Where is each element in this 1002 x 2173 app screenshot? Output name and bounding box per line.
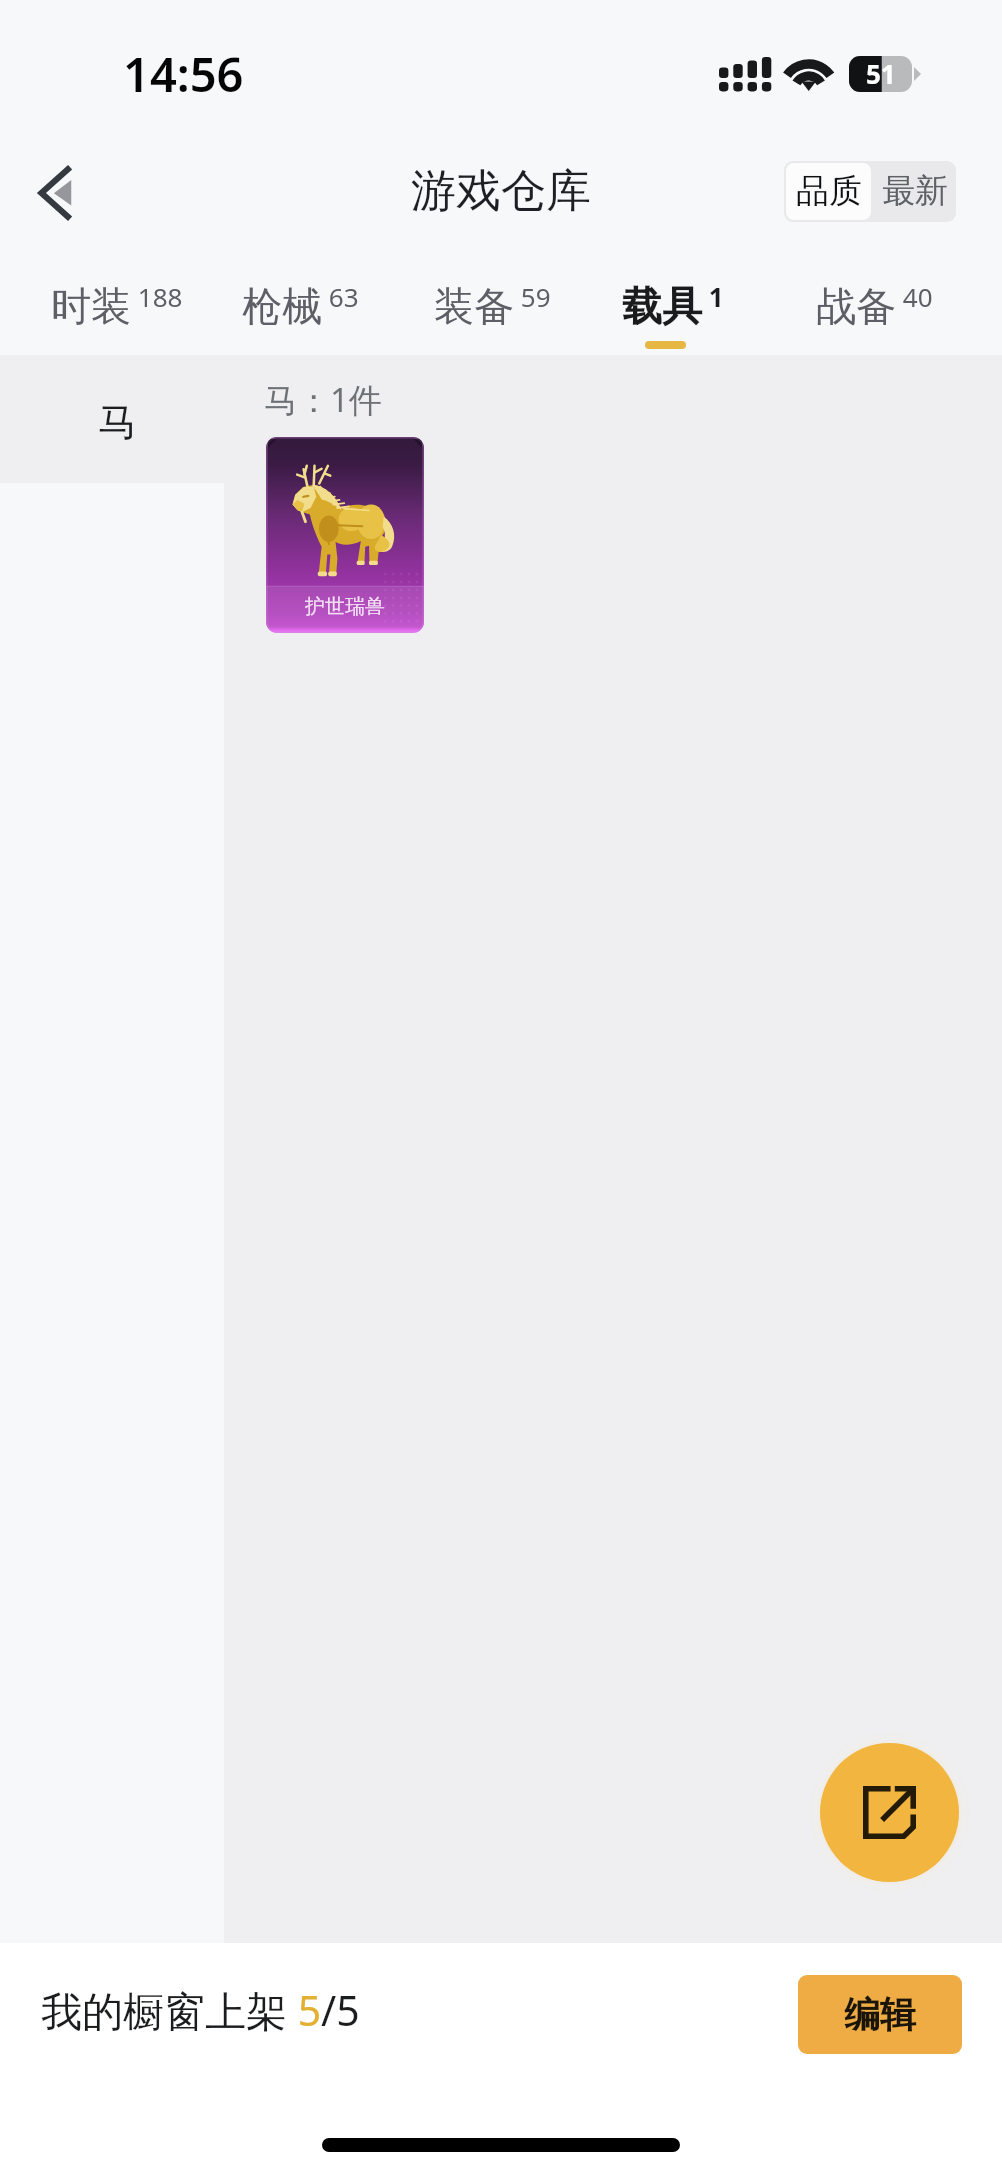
button[interactable]: 护世瑞兽 [266, 437, 424, 633]
staticText: 装备 59 [434, 279, 551, 332]
staticText: 时装 188 [51, 279, 183, 332]
button[interactable]: 编辑 [798, 1975, 962, 2054]
staticText: 枪械 63 [242, 279, 359, 332]
staticText: 51 [866, 56, 896, 91]
button[interactable]: 装备 59 [397, 241, 587, 355]
staticText: 14:56 [123, 42, 244, 106]
staticText: 最新 [882, 170, 948, 212]
button[interactable]: 品质 [786, 163, 871, 220]
staticText: 我的橱窗上架 5/5 [41, 1982, 360, 2038]
button[interactable]: 最新 [873, 163, 956, 220]
staticText: 护世瑞兽 [305, 594, 385, 619]
button[interactable]: Back [22, 153, 102, 233]
button[interactable]: 马 [0, 355, 224, 483]
staticText: 品质 [796, 170, 862, 212]
staticText: 载具 1 [622, 279, 724, 332]
staticText: 编辑 [844, 1992, 916, 2037]
button[interactable]: Open in new window [820, 1743, 959, 1882]
button[interactable]: 战备 40 [779, 241, 969, 355]
button[interactable]: 枪械 63 [205, 241, 395, 355]
button[interactable]: 载具 1 [578, 241, 768, 355]
staticText: 战备 40 [816, 279, 933, 332]
staticText: 马 [98, 398, 137, 447]
button[interactable]: 时装 188 [22, 241, 212, 355]
staticText: 游戏仓库 [411, 163, 591, 220]
staticText: 马：1件 [264, 377, 382, 422]
